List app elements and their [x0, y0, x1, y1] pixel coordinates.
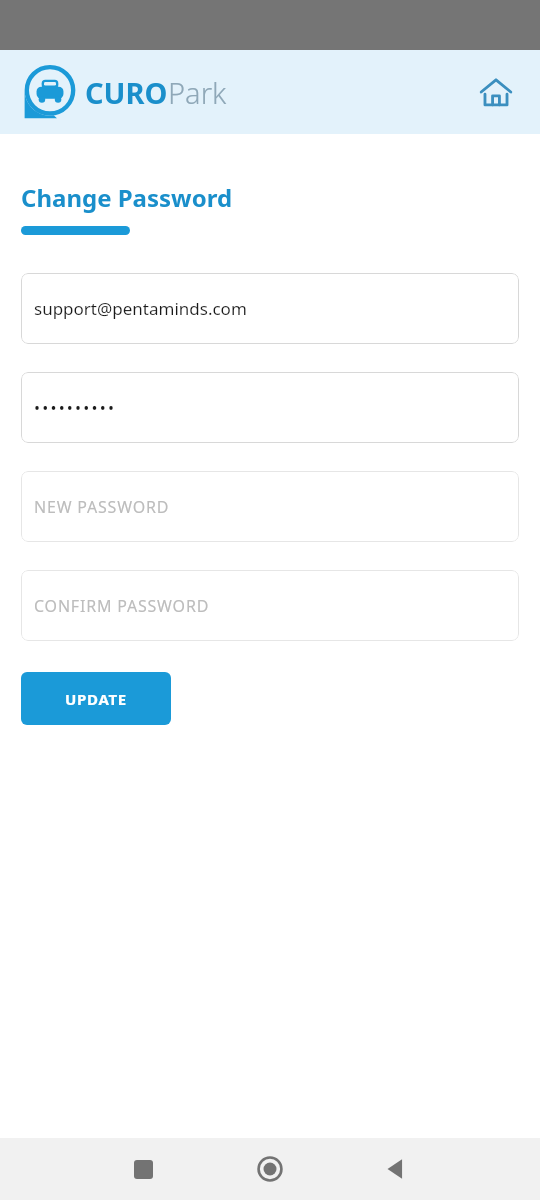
staticText: Park — [168, 73, 227, 112]
staticText: CURO — [85, 73, 168, 112]
staticText: NEW PASSWORD — [34, 496, 170, 518]
button[interactable]: •••••••••• — [21, 372, 519, 443]
button[interactable]: support@pentaminds.com — [21, 273, 519, 344]
button[interactable]: UPDATE — [21, 672, 171, 725]
button[interactable]: Back — [350, 1138, 440, 1200]
staticText: Change Password — [21, 181, 233, 214]
button[interactable]: Home — [225, 1138, 315, 1200]
button[interactable]: CONFIRM PASSWORD — [21, 570, 519, 641]
button[interactable]: NEW PASSWORD — [21, 471, 519, 542]
staticText: CONFIRM PASSWORD — [34, 595, 210, 617]
staticText: •••••••••• — [34, 397, 117, 419]
button[interactable]: Recent apps — [98, 1138, 188, 1200]
button[interactable]: Home — [472, 68, 520, 116]
staticText: support@pentaminds.com — [34, 297, 247, 320]
staticText: UPDATE — [65, 689, 127, 709]
